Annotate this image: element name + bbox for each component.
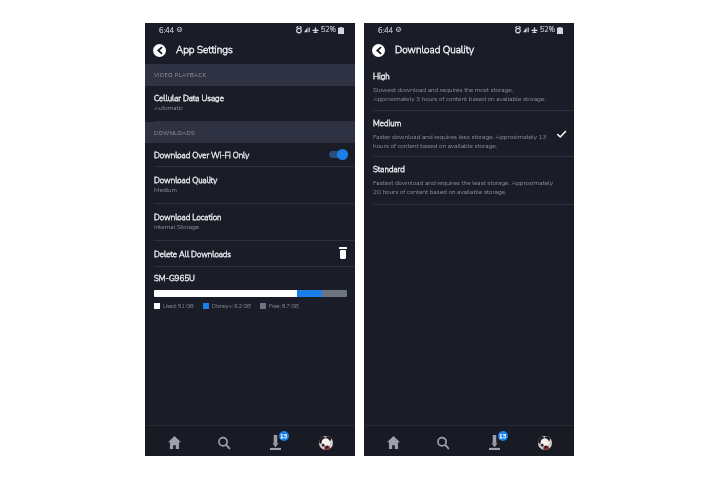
staticText: Cellular Data Usage (154, 93, 224, 104)
button[interactable]: Profile (519, 427, 570, 458)
staticText: 13 (280, 432, 288, 440)
staticText: High (373, 71, 390, 82)
button[interactable]: Download Over Wi-Fi Only (145, 143, 355, 167)
button[interactable]: Back (372, 44, 385, 57)
staticText: Delete All Downloads (154, 249, 232, 260)
staticText: Free: 8.7 GB (269, 302, 299, 310)
staticText: Approximately 3 hours of content based o… (373, 94, 546, 103)
staticText: Automatic (154, 103, 183, 112)
staticText: DOWNLOADS (154, 129, 196, 137)
staticText: Disney+: 9.2 GB (212, 302, 251, 310)
staticText: Medium (373, 118, 402, 129)
button[interactable]: Downloads (468, 427, 519, 458)
staticText: 6:44 (378, 25, 394, 35)
other: Selected (557, 130, 566, 139)
staticText: 6:44 (159, 25, 175, 35)
staticText: Download Quality (154, 175, 218, 186)
button[interactable]: Home (368, 427, 418, 458)
staticText: Fastest download and requires the least … (373, 178, 553, 187)
staticText: Internal Storage (154, 222, 199, 231)
staticText: SM-G965U (154, 273, 195, 284)
staticText: hours of content based on available stor… (373, 141, 497, 150)
staticText: 52% (540, 25, 555, 35)
staticText: App Settings (176, 43, 233, 57)
other: Delete all downloads (339, 247, 347, 259)
button[interactable]: Home (149, 427, 199, 458)
staticText: Faster download and requires less storag… (373, 132, 547, 141)
staticText: 20 hours of content based on available s… (373, 187, 507, 196)
button[interactable]: High (364, 64, 574, 111)
staticText: Medium (154, 185, 177, 194)
staticText: VIDEO PLAYBACK (154, 71, 207, 79)
button[interactable]: Download Quality (145, 167, 355, 204)
button[interactable]: Back (153, 44, 166, 57)
button[interactable]: Downloads (249, 427, 300, 458)
button[interactable]: Search (418, 427, 468, 458)
staticText: Download Quality (395, 43, 475, 57)
staticText: Standard (373, 164, 405, 175)
staticText: 52% (321, 25, 336, 35)
staticText: Download Over Wi-Fi Only (154, 150, 250, 161)
staticText: Download Location (154, 212, 222, 223)
staticText: Slowest download and requires the most s… (373, 85, 514, 94)
button[interactable]: Search (199, 427, 249, 458)
button[interactable]: Download Location (145, 204, 355, 241)
button[interactable]: Cellular Data Usage (145, 86, 355, 122)
staticText: 13 (499, 432, 507, 440)
button[interactable]: Profile (300, 427, 351, 458)
button[interactable]: Medium (364, 111, 574, 157)
staticText: Used: 51 GB (163, 302, 194, 310)
button[interactable] (329, 149, 347, 160)
button[interactable]: Standard (364, 157, 574, 205)
button[interactable]: Delete All Downloads (145, 241, 355, 267)
